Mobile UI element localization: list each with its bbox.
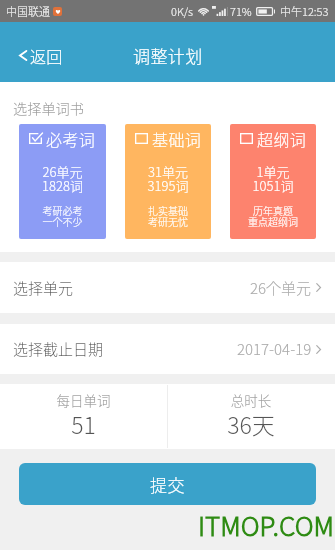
- button[interactable]: 必考词: [19, 124, 106, 239]
- button[interactable]: 基础词: [125, 124, 211, 239]
- staticText: 3195词: [125, 176, 211, 195]
- staticText: 选择单元: [13, 277, 74, 299]
- staticText: 71%: [230, 3, 252, 19]
- staticText: 1828词: [19, 176, 106, 195]
- staticText: 提交: [150, 472, 185, 497]
- button[interactable]: 返回: [0, 22, 73, 82]
- staticText: 超纲词: [257, 127, 307, 150]
- button[interactable]: 超纲词: [230, 124, 316, 239]
- staticText: 总时长: [167, 390, 335, 410]
- staticText: 历年真题: [230, 203, 316, 217]
- staticText: ITMOP.COM: [198, 506, 334, 544]
- staticText: 31单元: [125, 162, 211, 181]
- staticText: 重点超纲词: [230, 214, 316, 228]
- staticText: 基础词: [152, 127, 202, 150]
- staticText: 中午12:53: [280, 3, 329, 19]
- staticText: 必考词: [46, 127, 96, 150]
- staticText: 1051词: [230, 176, 316, 195]
- staticText: 一个不少: [19, 214, 106, 228]
- staticText: 1单元: [230, 162, 316, 181]
- staticText: 26个单元: [250, 277, 312, 299]
- staticText: 考研必考: [19, 203, 106, 217]
- staticText: 中国联通: [6, 3, 50, 19]
- staticText: 0K/s: [171, 3, 194, 19]
- staticText: 2017-04-19: [237, 338, 312, 360]
- staticText: 选择截止日期: [13, 338, 104, 360]
- button[interactable]: 选择截止日期: [0, 324, 335, 374]
- staticText: 调整计划: [133, 43, 203, 68]
- staticText: 51: [0, 407, 167, 440]
- button[interactable]: 提交: [19, 463, 316, 505]
- staticText: 36天: [167, 407, 335, 440]
- staticText: 26单元: [19, 162, 106, 181]
- button[interactable]: 选择单元: [0, 262, 335, 313]
- staticText: 每日单词: [0, 390, 167, 410]
- staticText: 扎实基础: [125, 203, 211, 217]
- staticText: 返回: [30, 44, 63, 67]
- staticText: 考研无忧: [125, 214, 211, 228]
- staticText: 选择单词书: [13, 98, 84, 119]
